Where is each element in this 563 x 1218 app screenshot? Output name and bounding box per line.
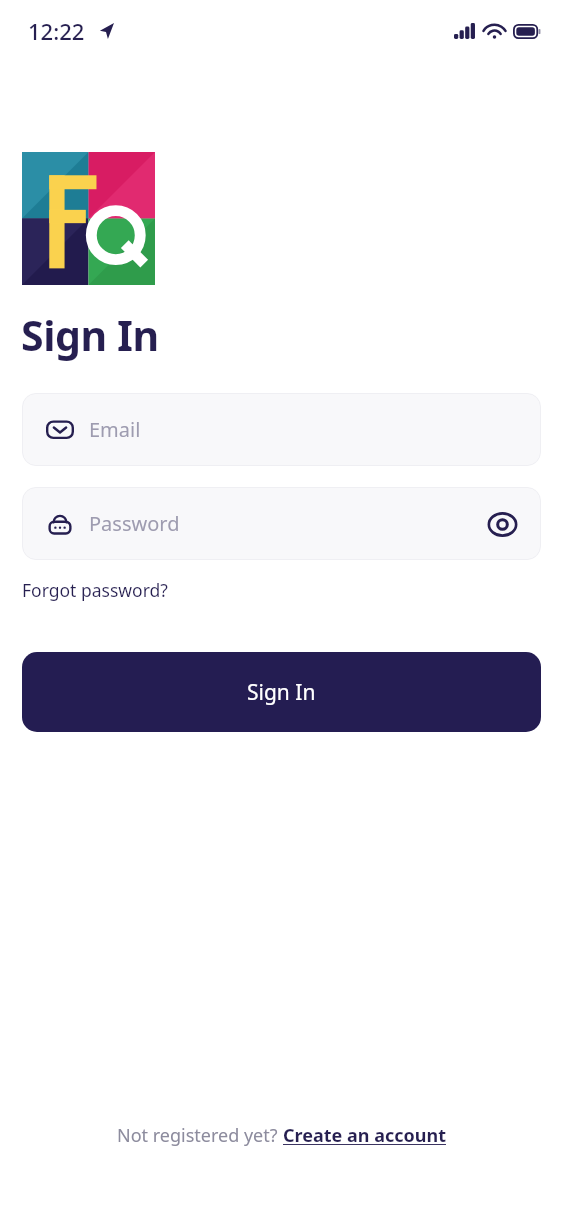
button[interactable]: Email	[22, 393, 541, 466]
staticText: Sign In	[247, 678, 316, 707]
staticText: 12:22	[28, 16, 85, 46]
staticText: Forgot password?	[22, 578, 168, 602]
staticText: Not registered yet?	[117, 1123, 283, 1148]
staticText: Email	[89, 416, 141, 443]
button[interactable]: Forgot password?	[22, 576, 168, 604]
staticText: Sign In	[21, 307, 159, 363]
button[interactable]: Sign In	[22, 652, 541, 732]
button[interactable]: Show password	[479, 501, 525, 547]
button[interactable]: Create an account	[283, 1123, 446, 1148]
staticText: Password	[89, 510, 180, 537]
staticText: Create an account	[283, 1123, 446, 1148]
button[interactable]: Password	[22, 487, 541, 560]
